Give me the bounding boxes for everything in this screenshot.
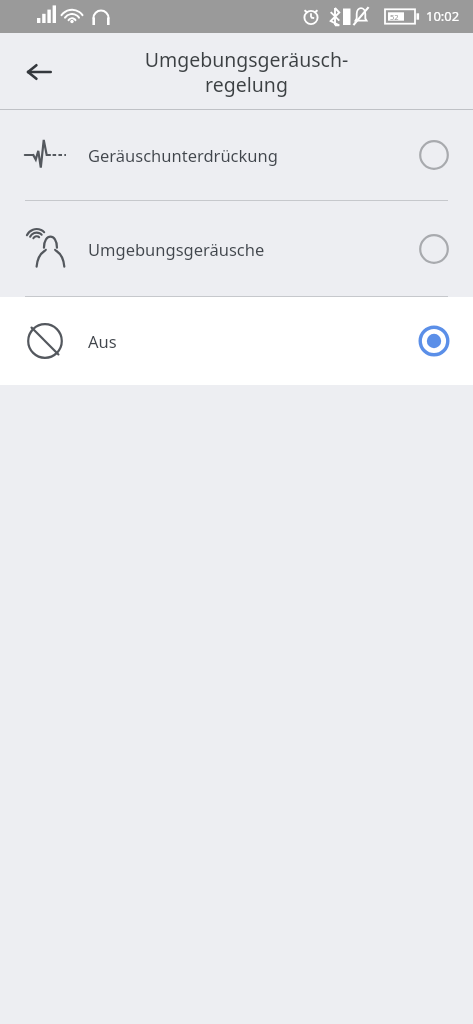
staticText: Umgebungsgeräusch- regelung bbox=[60, 46, 433, 98]
staticText: 10:02 bbox=[426, 7, 460, 25]
button[interactable]: Aus bbox=[0, 297, 473, 385]
button[interactable]: Geräuschunterdrückung bbox=[0, 110, 473, 200]
staticText: Aus bbox=[88, 330, 419, 352]
button[interactable]: Umgebungsgeräusche bbox=[0, 201, 473, 296]
staticText: 52 bbox=[390, 12, 399, 22]
staticText: Umgebungsgeräusche bbox=[88, 238, 419, 260]
button[interactable]: Back bbox=[16, 49, 62, 95]
staticText: Geräuschunterdrückung bbox=[88, 144, 419, 166]
